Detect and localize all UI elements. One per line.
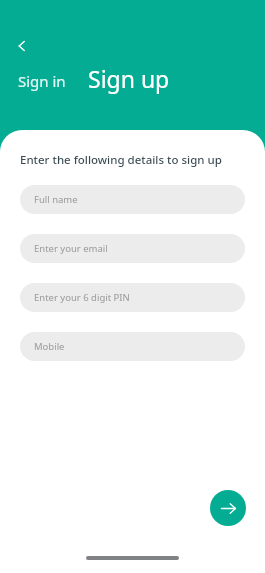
staticText: Sign in [18,71,66,91]
button[interactable]: Full name [20,185,245,214]
staticText: Enter the following details to sign up [20,152,222,168]
staticText: Sign up [88,63,170,94]
staticText: Mobile [34,340,65,353]
button[interactable]: Back [8,32,36,60]
button[interactable]: Enter your 6 digit PIN [20,283,245,312]
staticText: Enter your 6 digit PIN [34,291,130,304]
button[interactable]: Enter your email [20,234,245,263]
staticText: Full name [34,193,78,206]
button[interactable]: Sign in [16,67,68,95]
button[interactable]: Mobile [20,332,245,361]
button[interactable]: Sign up [86,62,172,95]
button[interactable]: Next [210,490,246,526]
staticText: Enter your email [34,242,108,255]
